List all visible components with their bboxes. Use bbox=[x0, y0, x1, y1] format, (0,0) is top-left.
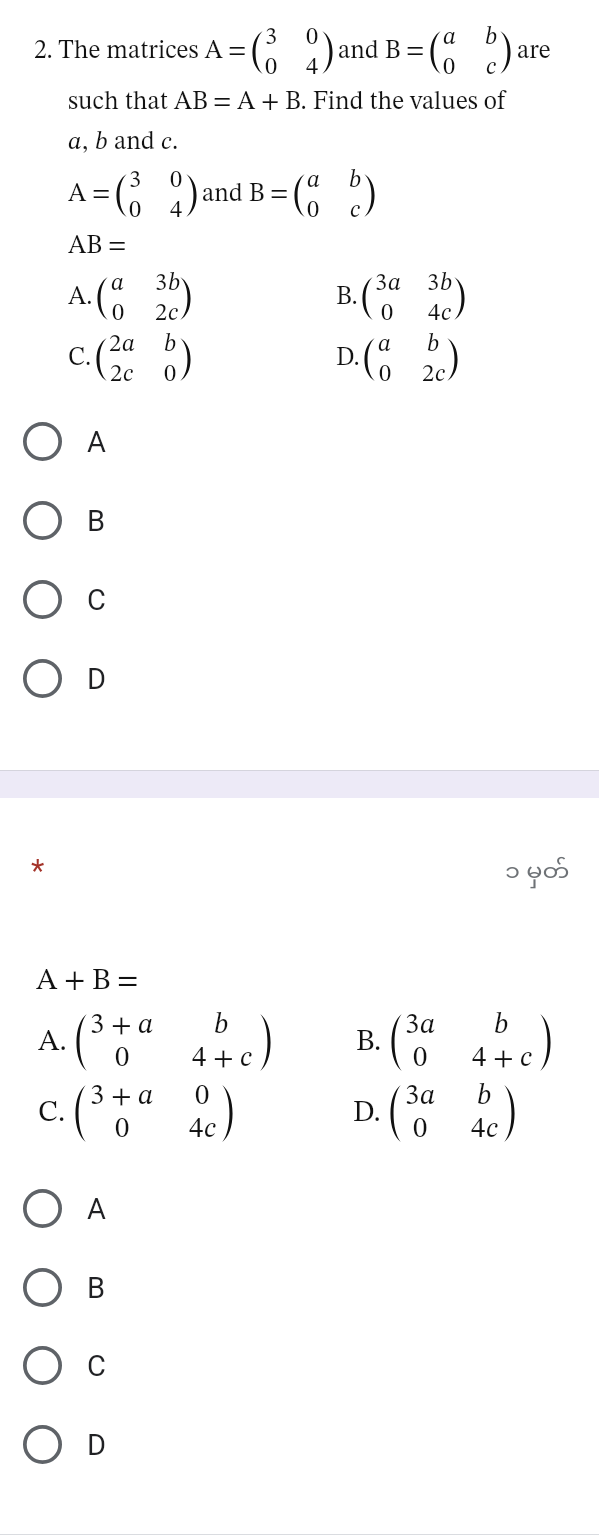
staticText: a bbox=[420, 1011, 436, 1040]
staticText: b bbox=[214, 1011, 229, 1040]
staticText: 0 bbox=[112, 301, 125, 326]
staticText: b bbox=[95, 130, 108, 156]
staticText: 4 bbox=[306, 55, 319, 80]
staticText: a bbox=[378, 332, 392, 357]
staticText: C bbox=[87, 1349, 106, 1383]
staticText: C. bbox=[68, 346, 92, 372]
button[interactable]: A bbox=[0, 402, 599, 481]
staticText: 0 bbox=[164, 362, 177, 387]
staticText: 4 bbox=[471, 1115, 486, 1144]
staticText: 0 bbox=[443, 55, 456, 80]
staticText: + bbox=[493, 1044, 514, 1073]
staticText: 0 bbox=[115, 1115, 130, 1144]
staticText: = bbox=[213, 90, 232, 116]
staticText: b bbox=[477, 1082, 492, 1111]
staticText: + bbox=[111, 1011, 132, 1040]
staticText: and B bbox=[338, 39, 401, 65]
staticText: a bbox=[307, 168, 320, 193]
staticText: 3 bbox=[90, 1082, 105, 1111]
staticText: c bbox=[486, 1115, 498, 1144]
staticText: b bbox=[164, 332, 177, 357]
staticText: A bbox=[87, 425, 106, 459]
staticText: 0 bbox=[413, 1115, 428, 1144]
button[interactable]: C bbox=[0, 1326, 599, 1405]
staticText: = bbox=[406, 39, 425, 65]
staticText: , bbox=[82, 130, 95, 156]
staticText: 2 bbox=[422, 362, 435, 387]
staticText: A. bbox=[38, 1027, 67, 1057]
staticText: B bbox=[87, 504, 106, 538]
staticText: ၁ မှတ် bbox=[505, 856, 570, 889]
staticText: 0 bbox=[307, 198, 320, 223]
staticText: and B bbox=[202, 182, 265, 208]
staticText: b bbox=[349, 168, 362, 193]
staticText: = bbox=[117, 966, 139, 996]
staticText: 0 bbox=[129, 198, 141, 223]
staticText: AB bbox=[68, 234, 103, 260]
button[interactable]: D bbox=[0, 1405, 599, 1484]
staticText: 2 bbox=[155, 301, 168, 326]
staticText: 0 bbox=[170, 168, 183, 193]
staticText: 3 bbox=[265, 25, 277, 50]
staticText: B. bbox=[336, 285, 358, 311]
button[interactable]: A bbox=[0, 1169, 599, 1248]
staticText: 4 bbox=[428, 301, 441, 326]
staticText: 0 bbox=[306, 25, 319, 50]
staticText: B bbox=[92, 966, 111, 996]
staticText: + bbox=[64, 966, 86, 996]
staticText: 0 bbox=[265, 55, 277, 80]
staticText: A bbox=[36, 966, 58, 996]
button[interactable]: B bbox=[0, 1248, 599, 1327]
button[interactable]: B bbox=[0, 481, 599, 560]
staticText: D bbox=[87, 662, 107, 696]
staticText: = bbox=[92, 182, 111, 208]
staticText: 3 bbox=[129, 168, 141, 193]
staticText: c bbox=[168, 301, 178, 326]
staticText: D. bbox=[353, 1098, 381, 1128]
staticText: + bbox=[261, 90, 280, 116]
staticText: b bbox=[168, 271, 178, 296]
staticText: are bbox=[517, 39, 551, 65]
staticText: c bbox=[520, 1044, 532, 1073]
staticText: C. bbox=[38, 1098, 66, 1128]
staticText: 3 bbox=[155, 271, 168, 296]
staticText: 0 bbox=[379, 362, 392, 387]
staticText: B. bbox=[356, 1027, 382, 1057]
staticText: c bbox=[240, 1044, 252, 1073]
staticText: a bbox=[420, 1082, 436, 1111]
staticText: A bbox=[68, 182, 87, 208]
staticText: 2. The matrices A bbox=[34, 39, 223, 65]
staticText: 4 bbox=[189, 1115, 204, 1144]
staticText: 3 bbox=[90, 1011, 105, 1040]
staticText: a bbox=[68, 130, 82, 156]
staticText: a bbox=[388, 271, 400, 296]
button[interactable]: D bbox=[0, 639, 599, 718]
staticText: c bbox=[435, 362, 445, 387]
button[interactable]: C bbox=[0, 560, 599, 639]
staticText: b bbox=[427, 332, 440, 357]
staticText: 0 bbox=[195, 1082, 210, 1111]
staticText: 3 bbox=[375, 271, 388, 296]
staticText: 3 bbox=[405, 1082, 420, 1111]
staticText: 0 bbox=[381, 301, 394, 326]
staticText: 2 bbox=[109, 332, 122, 357]
staticText: . bbox=[172, 130, 179, 156]
staticText: 4 bbox=[170, 198, 183, 223]
staticText: + bbox=[111, 1082, 132, 1111]
staticText: D. bbox=[336, 346, 360, 372]
staticText: A bbox=[87, 1192, 106, 1226]
staticText: 4 bbox=[472, 1044, 487, 1073]
staticText: c bbox=[486, 55, 496, 80]
staticText: 4 bbox=[192, 1044, 207, 1073]
staticText: b bbox=[440, 271, 452, 296]
staticText: a bbox=[122, 332, 134, 357]
staticText: = bbox=[270, 182, 289, 208]
staticText: c bbox=[441, 301, 451, 326]
staticText: B bbox=[87, 1271, 106, 1305]
staticText: 0 bbox=[413, 1044, 428, 1073]
staticText: = bbox=[228, 39, 247, 65]
staticText: and bbox=[108, 130, 161, 156]
staticText: c bbox=[204, 1115, 216, 1144]
staticText: a bbox=[443, 25, 456, 50]
staticText: 2 bbox=[110, 362, 123, 387]
